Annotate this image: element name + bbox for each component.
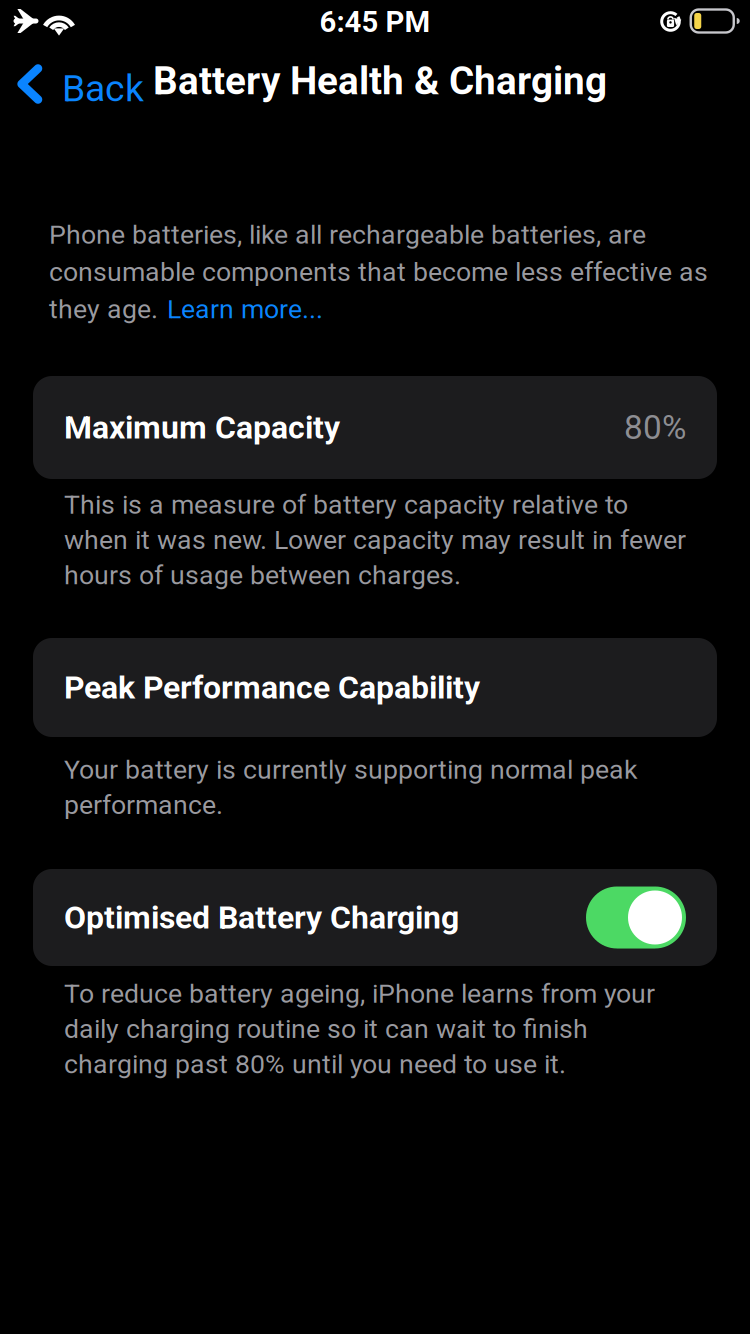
button[interactable]: Learn more...: [158, 293, 323, 325]
button[interactable]: Optimised Battery Charging: [33, 869, 717, 966]
staticText: Maximum Capacity: [64, 409, 340, 446]
button[interactable]: Back: [0, 44, 148, 124]
staticText: Back: [62, 67, 144, 110]
staticText: Peak Performance Capability: [64, 669, 480, 706]
button[interactable]: Peak Performance Capability: [33, 638, 717, 737]
staticText: Battery Health & Charging: [153, 58, 607, 104]
staticText: Phone batteries, like all rechargeable b…: [49, 219, 646, 250]
staticText: 6:45 PM: [319, 5, 430, 39]
button[interactable]: Maximum Capacity: [33, 376, 717, 479]
staticText: Your battery is currently supporting nor…: [64, 754, 638, 820]
staticText: 80%: [624, 408, 686, 447]
staticText: Learn more...: [167, 293, 323, 325]
staticText: they age.: [49, 293, 158, 325]
staticText: To reduce battery ageing, iPhone learns …: [64, 978, 655, 1080]
staticText: This is a measure of battery capacity re…: [64, 489, 686, 591]
staticText: consumable components that become less e…: [49, 256, 708, 288]
staticText: Optimised Battery Charging: [64, 899, 459, 936]
